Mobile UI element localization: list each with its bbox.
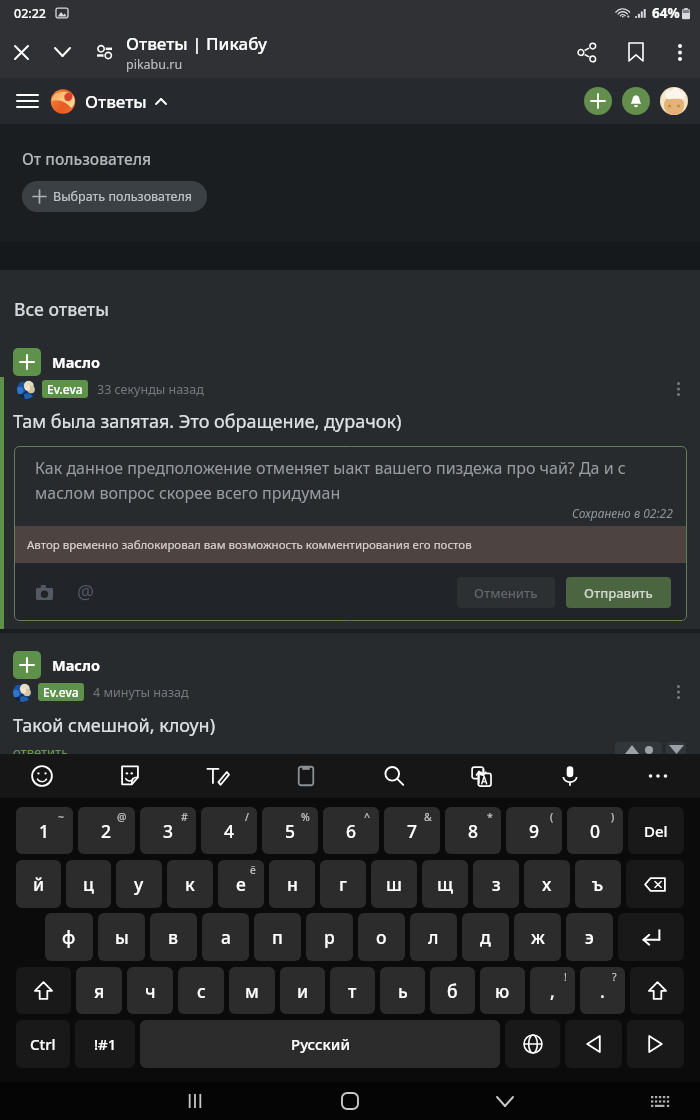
staticText: ?	[612, 970, 617, 984]
button[interactable]: Add	[584, 87, 612, 115]
button[interactable]: е	[218, 860, 264, 908]
button[interactable]: и	[280, 967, 325, 1014]
button[interactable]: Отменить	[457, 577, 555, 608]
staticText: Ev.eva	[43, 684, 79, 700]
button[interactable]: Comment options	[668, 379, 688, 399]
button[interactable]: Clipboard	[286, 756, 326, 796]
staticText: (	[550, 810, 554, 824]
button[interactable]: More	[638, 756, 678, 796]
staticText: pikabu.ru	[126, 56, 183, 73]
button[interactable]: Ответы	[85, 90, 167, 113]
button[interactable]: р	[306, 913, 353, 961]
button[interactable]: ответить	[13, 743, 69, 754]
button[interactable]: ъ	[575, 860, 621, 908]
button[interactable]: left	[565, 1020, 622, 1068]
button[interactable]: ф	[45, 913, 93, 961]
button[interactable]: Bookmark	[612, 26, 660, 78]
button[interactable]: э	[566, 913, 613, 961]
button[interactable]: в	[150, 913, 197, 961]
button[interactable]: Ctrl	[16, 1020, 70, 1068]
button[interactable]: Notifications	[622, 87, 650, 115]
button[interactable]: Emoji	[22, 756, 62, 796]
button[interactable]: а	[202, 913, 249, 961]
button[interactable]: Translate	[462, 756, 502, 796]
button[interactable]: Recents	[176, 1082, 214, 1120]
button[interactable]: н	[269, 860, 315, 908]
button[interactable]: 3	[140, 807, 196, 854]
button[interactable]: Back	[486, 1082, 524, 1120]
button[interactable]: щ	[422, 860, 468, 908]
button[interactable]: к	[167, 860, 213, 908]
button[interactable]: Выбрать пользователя	[22, 181, 207, 212]
button[interactable]: з	[473, 860, 519, 908]
button[interactable]: г	[320, 860, 366, 908]
button[interactable]: ц	[66, 860, 111, 908]
button[interactable]: у	[116, 860, 162, 908]
button[interactable]: Next field	[666, 742, 686, 754]
button[interactable]: 2	[78, 807, 135, 854]
staticText: /	[245, 810, 249, 824]
button[interactable]: Mention user	[70, 575, 102, 609]
button[interactable]: 9	[506, 807, 562, 854]
button[interactable]: Comment options	[668, 682, 688, 702]
button[interactable]: enter	[618, 913, 684, 961]
button[interactable]: Отправить	[566, 577, 671, 608]
button[interactable]: 1	[16, 807, 73, 854]
button[interactable]: ы	[98, 913, 145, 961]
button[interactable]: м	[229, 967, 275, 1014]
button[interactable]: Share	[562, 26, 612, 78]
button[interactable]: Voice input	[550, 756, 590, 796]
button[interactable]: х	[524, 860, 570, 908]
button[interactable]: д	[462, 913, 509, 961]
button[interactable]: Search	[374, 756, 414, 796]
button[interactable]: Site settings	[83, 26, 125, 78]
button[interactable]: Menu	[10, 84, 44, 118]
button[interactable]: 8	[445, 807, 501, 854]
button[interactable]: 5	[262, 807, 318, 854]
button[interactable]: Русский	[140, 1020, 500, 1068]
button[interactable]: б	[430, 967, 475, 1014]
button[interactable]: .	[580, 967, 625, 1014]
button[interactable]: Previous field	[615, 742, 662, 754]
button[interactable]: й	[16, 860, 61, 908]
button[interactable]: п	[254, 913, 301, 961]
button[interactable]: Del	[628, 807, 684, 854]
button[interactable]: Profile	[660, 87, 688, 115]
button[interactable]: Stickers	[110, 756, 150, 796]
button[interactable]: л	[410, 913, 457, 961]
button[interactable]: Expand	[42, 26, 83, 78]
button[interactable]: 7	[384, 807, 440, 854]
button[interactable]: ,	[530, 967, 575, 1014]
button[interactable]: Ev.eva	[38, 683, 84, 701]
button[interactable]: shift	[630, 967, 684, 1014]
button[interactable]: Text editing	[198, 756, 238, 796]
button[interactable]: Hide keyboard	[641, 1082, 679, 1120]
button[interactable]: 6	[323, 807, 379, 854]
button[interactable]: т	[330, 967, 375, 1014]
button[interactable]: Home	[331, 1082, 369, 1120]
button[interactable]: !#1	[75, 1020, 135, 1068]
button[interactable]: ь	[380, 967, 425, 1014]
button[interactable]: я	[76, 967, 122, 1014]
button[interactable]: shift	[16, 967, 71, 1014]
button[interactable]: Close	[0, 26, 42, 78]
button[interactable]: backspace	[626, 860, 684, 908]
staticText: з	[492, 872, 501, 896]
button[interactable]: 4	[201, 807, 257, 854]
button[interactable]: ж	[514, 913, 561, 961]
staticText: к	[185, 872, 195, 896]
button[interactable]: Ev.eva	[42, 380, 88, 398]
staticText: Автор временно заблокировал вам возможно…	[27, 537, 472, 553]
button[interactable]: 0	[567, 807, 623, 854]
button[interactable]: right	[627, 1020, 684, 1068]
button[interactable]: ч	[127, 967, 173, 1014]
button[interactable]: globe	[505, 1020, 560, 1068]
button[interactable]: Attach photo	[28, 575, 60, 609]
button[interactable]: More options	[660, 26, 700, 78]
button[interactable]: ш	[371, 860, 417, 908]
button[interactable]: с	[178, 967, 224, 1014]
button[interactable]: ю	[480, 967, 525, 1014]
button[interactable]: Expand post	[13, 651, 41, 679]
button[interactable]: Expand post	[13, 348, 41, 376]
button[interactable]: о	[358, 913, 405, 961]
